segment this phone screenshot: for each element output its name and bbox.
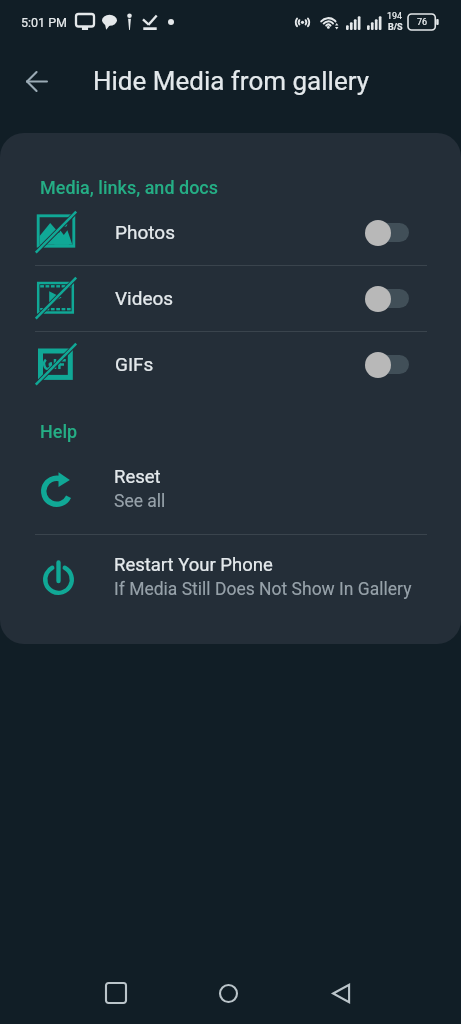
button[interactable]: Reset bbox=[0, 450, 461, 528]
staticText: 76 bbox=[417, 17, 428, 28]
staticText: B/S bbox=[388, 22, 403, 33]
staticText: See all bbox=[114, 491, 166, 512]
staticText: If Media Still Does Not Show In Gallery bbox=[114, 579, 412, 600]
button[interactable]: Back bbox=[302, 962, 381, 1024]
button[interactable]: Photos bbox=[0, 199, 461, 265]
staticText: Restart Your Phone bbox=[114, 554, 273, 576]
button[interactable]: Restart Your Phone bbox=[0, 538, 461, 616]
button[interactable]: Recents bbox=[76, 962, 155, 1024]
staticText: 194 bbox=[387, 11, 403, 22]
staticText: Videos bbox=[115, 287, 174, 309]
button[interactable]: GIFs bbox=[0, 331, 461, 397]
staticText: Hide Media from gallery bbox=[93, 66, 370, 96]
staticText: Media, links, and docs bbox=[40, 177, 219, 198]
button[interactable]: Home bbox=[189, 962, 268, 1024]
staticText: Reset bbox=[114, 466, 161, 488]
staticText: GIFs bbox=[115, 353, 154, 375]
staticText: Help bbox=[40, 421, 78, 442]
button[interactable]: Videos bbox=[0, 265, 461, 331]
staticText: 5:01 PM bbox=[21, 15, 68, 30]
button[interactable]: Back bbox=[14, 59, 59, 104]
staticText: Photos bbox=[115, 221, 175, 243]
